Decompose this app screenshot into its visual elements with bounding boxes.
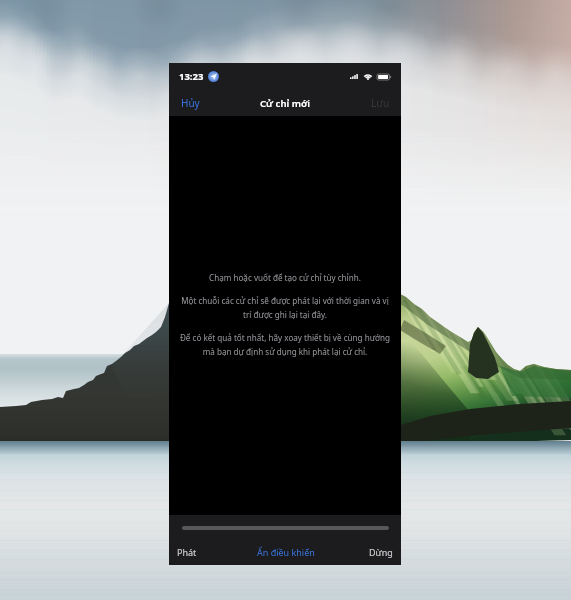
button[interactable]: Dừng xyxy=(324,546,401,558)
button[interactable]: Phát xyxy=(169,546,247,558)
button[interactable]: Hủy xyxy=(169,92,212,114)
staticText: Ẩn điều khiển xyxy=(257,546,315,558)
staticText: Lưu xyxy=(371,96,390,110)
staticText: Dừng xyxy=(369,546,393,558)
staticText: Hủy xyxy=(181,96,200,110)
button[interactable]: Ẩn điều khiển xyxy=(247,546,324,558)
staticText: Để có kết quả tốt nhất, hãy xoay thiết b… xyxy=(176,332,394,357)
staticText: Chạm hoặc vuốt để tạo cử chỉ tùy chỉnh. xyxy=(209,272,361,283)
button[interactable]: Lưu xyxy=(360,92,401,114)
other: Location active xyxy=(208,71,219,82)
staticText: Cử chỉ mới xyxy=(260,97,310,110)
staticText: 13:23 xyxy=(179,70,204,83)
staticText: Một chuỗi các cử chỉ sẽ được phát lại vớ… xyxy=(176,295,394,320)
staticText: Phát xyxy=(177,546,197,558)
